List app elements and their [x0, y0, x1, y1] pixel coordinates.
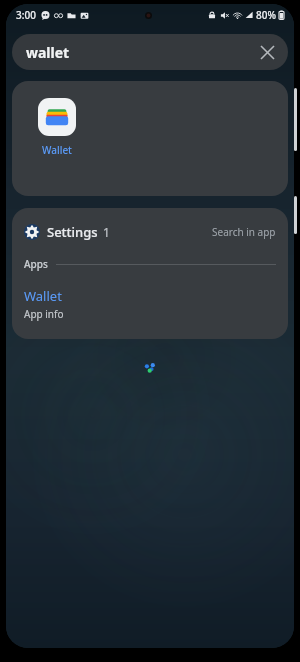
button[interactable]: Wallet: [12, 285, 288, 323]
staticText: 1: [103, 224, 110, 240]
staticText: App info: [24, 307, 64, 321]
staticText: Apps: [24, 257, 48, 271]
staticText: Wallet: [24, 287, 62, 305]
staticText: wallet: [26, 43, 70, 62]
button[interactable]: wallet: [12, 34, 288, 70]
staticText: Wallet: [42, 143, 72, 157]
button[interactable]: Wallet: [30, 98, 84, 157]
staticText: Settings: [47, 223, 98, 241]
button[interactable]: Settings: [12, 220, 288, 244]
staticText: 3:00: [16, 8, 36, 22]
staticText: Search in app: [212, 225, 276, 239]
staticText: 80%: [256, 8, 276, 22]
button[interactable]: Clear search: [254, 39, 280, 65]
